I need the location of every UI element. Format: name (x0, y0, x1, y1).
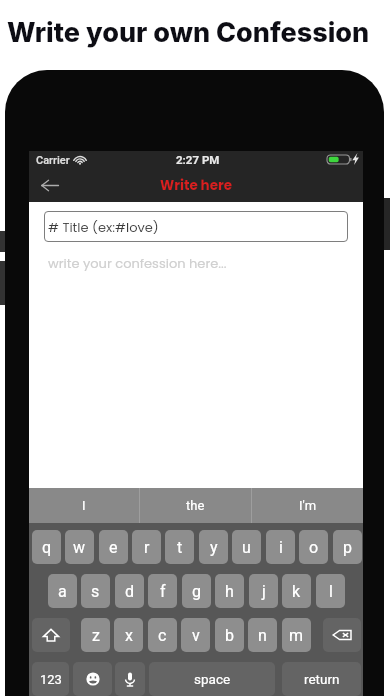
staticText: s (91, 582, 100, 601)
staticText: b (225, 626, 234, 645)
staticText: x (125, 626, 133, 645)
staticText: f (160, 582, 166, 601)
staticText: I (82, 498, 86, 513)
button[interactable]: v (181, 618, 210, 652)
button[interactable]: a (48, 574, 77, 608)
staticText: v (192, 626, 200, 645)
button[interactable]: emoji (73, 662, 112, 696)
button[interactable]: Back (35, 171, 65, 199)
staticText: I'm (299, 498, 317, 513)
staticText: Write here (160, 176, 233, 195)
staticText: Write your own Confession (7, 16, 370, 49)
staticText: k (292, 582, 301, 601)
button[interactable]: k (282, 574, 311, 608)
staticText: w (73, 538, 86, 557)
staticText: space (194, 671, 231, 687)
button[interactable]: r (132, 530, 161, 564)
staticText: e (109, 538, 118, 557)
button[interactable]: i (266, 530, 295, 564)
button[interactable]: y (199, 530, 228, 564)
button[interactable]: o (299, 530, 328, 564)
button[interactable]: t (165, 530, 194, 564)
button[interactable]: shift (32, 618, 70, 652)
button[interactable]: h (215, 574, 244, 608)
staticText: y (210, 538, 218, 557)
button[interactable]: l (316, 574, 345, 608)
staticText: Carrier (36, 154, 70, 167)
staticText: z (92, 626, 100, 645)
staticText: 2:27 PM (176, 153, 220, 166)
staticText: a (58, 582, 67, 601)
button[interactable]: d (115, 574, 144, 608)
staticText: n (258, 626, 267, 645)
button[interactable]: n (248, 618, 277, 652)
button[interactable]: u (232, 530, 261, 564)
staticText: t (177, 538, 183, 557)
button[interactable]: I'm (252, 488, 363, 523)
staticText: d (125, 582, 135, 601)
button[interactable]: p (333, 530, 362, 564)
button[interactable]: space (149, 662, 275, 696)
staticText: g (192, 582, 201, 601)
staticText: u (242, 538, 251, 557)
staticText: return (304, 671, 340, 687)
staticText: j (262, 582, 266, 601)
staticText: c (158, 626, 167, 645)
button[interactable]: g (182, 574, 211, 608)
button[interactable]: b (215, 618, 244, 652)
button[interactable]: del (323, 618, 361, 652)
button[interactable]: j (249, 574, 278, 608)
staticText: # Title (ex:#love) (48, 218, 159, 236)
staticText: o (309, 538, 319, 557)
button[interactable]: c (148, 618, 177, 652)
staticText: m (289, 626, 304, 645)
button[interactable]: the (140, 488, 251, 523)
button[interactable]: 123 (32, 662, 69, 696)
button[interactable]: m (282, 618, 311, 652)
button[interactable]: w (65, 530, 94, 564)
button[interactable]: s (81, 574, 110, 608)
staticText: write your confession here... (48, 254, 227, 272)
staticText: i (279, 538, 283, 557)
staticText: the (186, 498, 205, 513)
button[interactable]: f (148, 574, 177, 608)
button[interactable]: x (114, 618, 143, 652)
button[interactable]: z (81, 618, 110, 652)
button[interactable]: mic (115, 662, 145, 696)
staticText: q (42, 538, 52, 557)
button[interactable]: return (282, 662, 361, 696)
staticText: l (329, 582, 333, 601)
staticText: h (225, 582, 234, 601)
button[interactable]: I (29, 488, 139, 523)
staticText: p (343, 538, 352, 557)
button[interactable]: e (99, 530, 128, 564)
staticText: r (144, 538, 150, 557)
button[interactable]: q (32, 530, 61, 564)
button[interactable]: # Title (ex:#love) (44, 211, 348, 242)
staticText: 123 (40, 672, 62, 687)
